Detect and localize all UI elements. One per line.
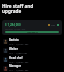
staticText: Manager: [9, 64, 22, 68]
staticText: Waiter: [9, 47, 18, 51]
staticText: Income +$840 / sec: [5, 28, 26, 31]
button[interactable]: Head chef: [3, 55, 62, 64]
button[interactable]: Upgrade all: [5, 31, 59, 33]
button[interactable]: Barista: [3, 37, 62, 46]
button[interactable]: Waiter: [3, 46, 62, 55]
staticText: Lv 2 · +$120 / sec: [9, 43, 29, 46]
staticText: Lv 1 · +$80 / sec: [9, 52, 28, 55]
staticText: Barista: [9, 38, 19, 42]
staticText: Upgrade all: [27, 31, 38, 33]
staticText: Lv 3 · +$240 / sec: [9, 61, 29, 64]
staticText: $ 1,284,000: [5, 23, 21, 27]
button[interactable]: Manager: [3, 64, 62, 72]
staticText: Hire staff and upgrade: [2, 3, 34, 14]
staticText: 128: [51, 24, 55, 27]
staticText: Lv 1 · +$400 / sec: [9, 69, 29, 72]
staticText: Head chef: [9, 56, 23, 60]
